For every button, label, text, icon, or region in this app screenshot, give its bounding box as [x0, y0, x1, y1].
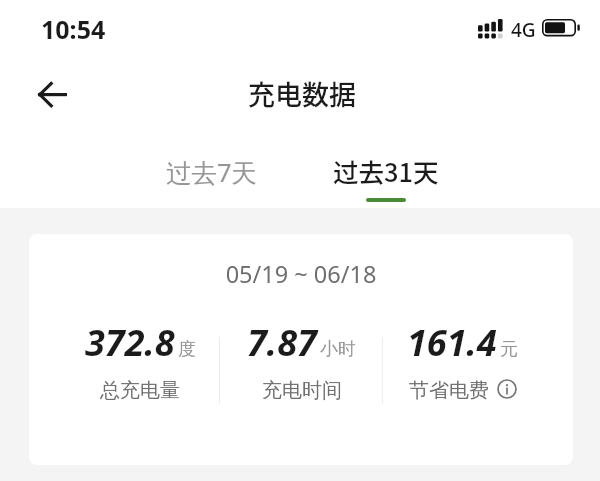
staticText: 161.4: [407, 318, 497, 367]
staticText: 372.8: [85, 318, 175, 367]
staticText: 充电数据: [248, 74, 356, 113]
staticText: 05/19 ~ 06/18: [29, 258, 573, 290]
button[interactable]: Info: [497, 379, 517, 399]
staticText: 4G: [511, 17, 536, 43]
staticText: 小时: [320, 338, 356, 361]
staticText: 元: [500, 338, 518, 361]
button[interactable]: 过去7天: [155, 155, 269, 205]
staticText: 过去7天: [166, 155, 258, 190]
button[interactable]: Back: [22, 70, 78, 126]
staticText: 过去31天: [333, 152, 439, 189]
staticText: 10:54: [41, 12, 106, 46]
staticText: 节省电费: [409, 378, 489, 403]
button[interactable]: 过去31天: [330, 152, 441, 210]
staticText: 度: [178, 338, 196, 361]
other: Signal strength: [478, 18, 506, 40]
staticText: 总充电量: [100, 378, 180, 403]
staticText: 充电时间: [262, 378, 342, 403]
staticText: 7.87: [247, 318, 317, 367]
other: Battery: [542, 19, 584, 38]
